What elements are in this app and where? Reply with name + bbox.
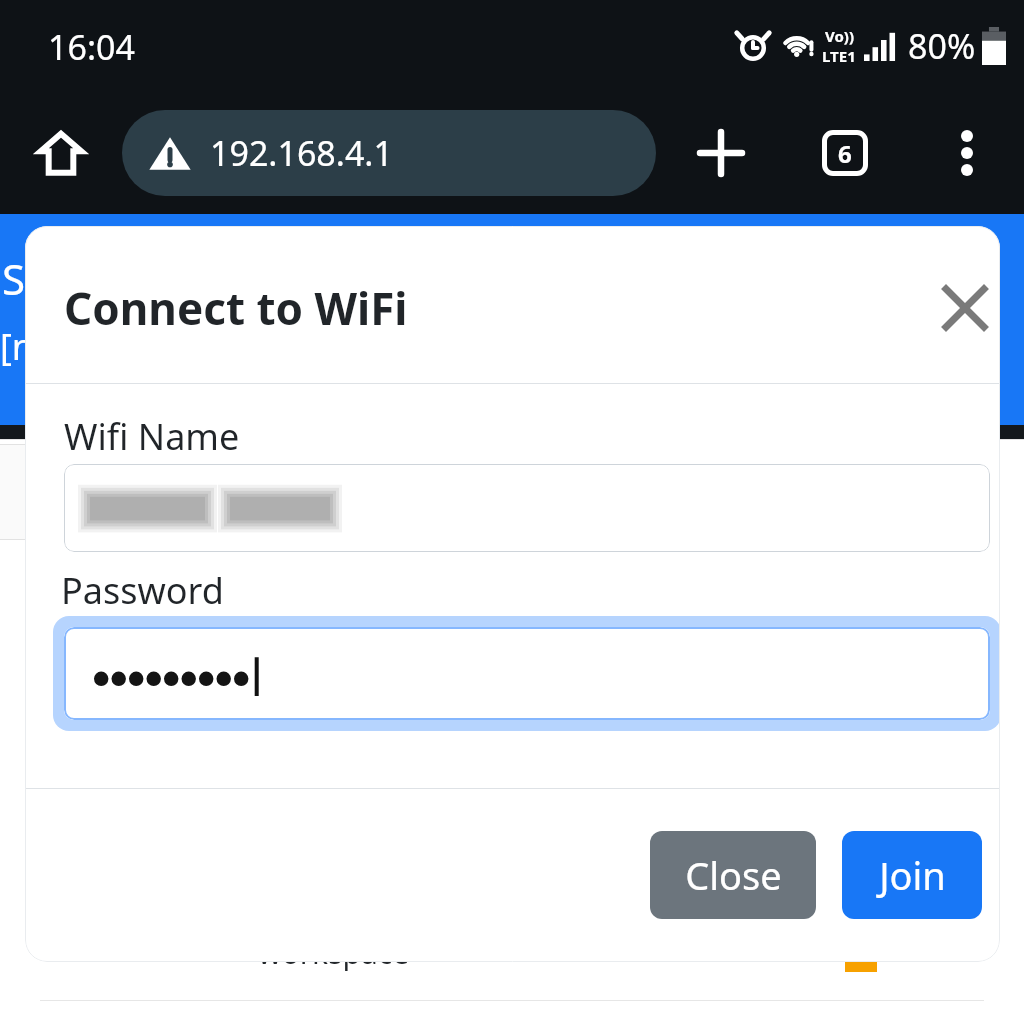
button[interactable]: More options — [934, 120, 1000, 186]
button[interactable]: Home — [28, 120, 94, 186]
button[interactable]: Join — [842, 831, 982, 919]
staticText: 16:04 — [48, 24, 135, 70]
staticText: Wifi Name — [64, 412, 240, 461]
staticText: Vo)) — [825, 26, 854, 46]
staticText: 192.168.4.1 — [210, 130, 393, 176]
button[interactable]: 192.168.4.1 — [122, 110, 656, 196]
button[interactable] — [64, 464, 990, 552]
staticText: S — [2, 250, 26, 307]
button[interactable]: Close dialog — [929, 272, 1000, 344]
staticText: Close — [685, 849, 782, 901]
button[interactable]: Close — [650, 831, 816, 919]
staticText: Password — [61, 566, 224, 615]
staticText: workspace — [258, 932, 410, 973]
staticText: Connect to WiFi — [64, 278, 408, 338]
staticText: [n — [0, 322, 35, 371]
staticText: 6 — [838, 137, 852, 170]
button[interactable] — [64, 627, 990, 720]
staticText: 80% — [908, 23, 976, 69]
button[interactable]: Tabs, 6 open — [812, 120, 878, 186]
staticText: LTE1 — [822, 46, 856, 66]
staticText: Join — [879, 849, 946, 901]
button[interactable]: New tab — [688, 120, 754, 186]
